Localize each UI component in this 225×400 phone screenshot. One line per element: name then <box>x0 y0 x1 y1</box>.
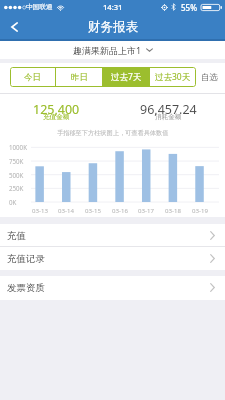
staticText: 250K <box>9 184 24 192</box>
staticText: 昨日 <box>71 72 88 83</box>
button[interactable]: 自选 <box>196 67 223 87</box>
button[interactable]: 发票资质 <box>0 276 225 299</box>
staticText: 03-13 <box>32 206 48 214</box>
staticText: 03-15 <box>85 206 101 214</box>
staticText: 自选 <box>201 72 218 83</box>
button[interactable]: Back <box>0 14 28 39</box>
staticText: 过去7天 <box>111 71 142 83</box>
staticText: 充值金额 <box>43 113 70 121</box>
button[interactable]: 充值记录 <box>0 247 225 270</box>
staticText: 充值 <box>7 230 26 242</box>
staticText: 03-17 <box>138 206 154 214</box>
button[interactable]: 过去7天 <box>103 67 149 87</box>
button[interactable]: 趣满果新品上市1 <box>0 41 225 59</box>
staticText: 750K <box>9 157 24 165</box>
staticText: 消耗金额 <box>155 113 182 121</box>
staticText: 03-16 <box>112 206 128 214</box>
staticText: 0K <box>9 198 17 206</box>
button[interactable]: 昨日 <box>56 67 102 87</box>
staticText: 03-19 <box>192 206 208 214</box>
staticText: 03-14 <box>58 206 74 214</box>
button[interactable]: 过去30天 <box>150 67 196 87</box>
staticText: 趣满果新品上市1 <box>73 44 142 56</box>
staticText: 今日 <box>24 72 41 83</box>
staticText: 500K <box>9 171 24 179</box>
staticText: 充值记录 <box>7 253 45 265</box>
staticText: 96,457.24 <box>140 101 197 118</box>
button[interactable]: 今日 <box>10 67 55 87</box>
staticText: 中国联通 <box>26 3 53 11</box>
staticText: 手指移至下方柱状图上，可查看具体数值 <box>57 129 169 137</box>
staticText: 125,400 <box>33 101 80 118</box>
staticText: 14:31 <box>103 2 123 12</box>
staticText: 03-18 <box>165 206 181 214</box>
button[interactable]: 充值 <box>0 224 225 247</box>
staticText: 1000K <box>9 143 27 151</box>
staticText: 55% <box>181 2 197 13</box>
staticText: 过去30天 <box>155 71 191 83</box>
staticText: 发票资质 <box>7 282 45 294</box>
staticText: 财务报表 <box>88 19 138 35</box>
